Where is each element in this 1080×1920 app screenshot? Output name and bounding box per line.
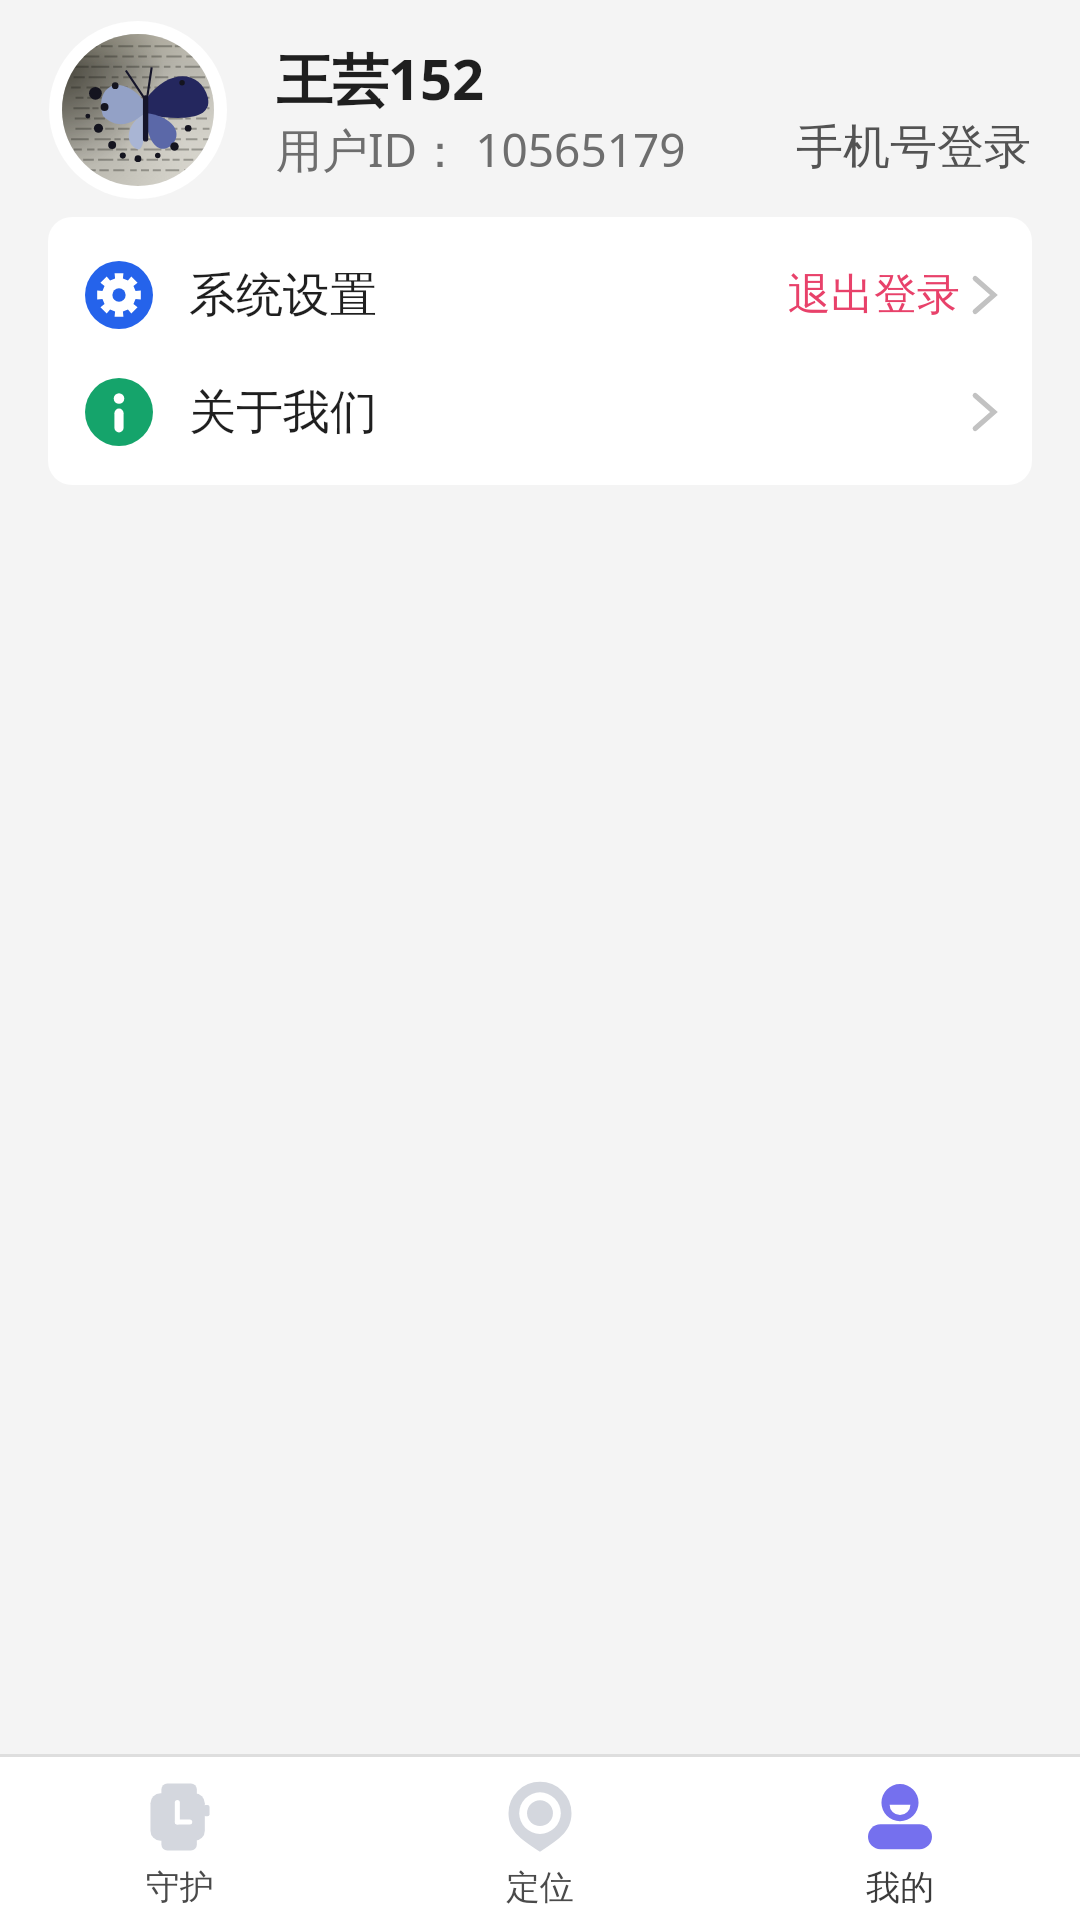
button[interactable]: 关于我们 bbox=[48, 352, 1032, 472]
button[interactable]: 手机号登录 bbox=[786, 112, 1041, 183]
button[interactable]: 定位 bbox=[360, 1757, 720, 1920]
staticText: 关于我们 bbox=[189, 383, 377, 442]
button[interactable]: 系统设置 bbox=[48, 235, 1032, 355]
staticText: 手机号登录 bbox=[796, 118, 1031, 177]
button[interactable]: Profile photo bbox=[49, 21, 227, 199]
button[interactable]: 守护 bbox=[0, 1757, 360, 1920]
staticText: 退出登录 bbox=[788, 268, 960, 322]
staticText: 我的 bbox=[866, 1866, 934, 1909]
staticText: 系统设置 bbox=[189, 266, 377, 325]
staticText: 定位 bbox=[506, 1866, 574, 1909]
staticText: 用户ID： 10565179 bbox=[276, 118, 686, 181]
staticText: 守护 bbox=[146, 1866, 214, 1909]
staticText: 王芸152 bbox=[276, 40, 485, 116]
button[interactable]: 我的 bbox=[720, 1757, 1080, 1920]
